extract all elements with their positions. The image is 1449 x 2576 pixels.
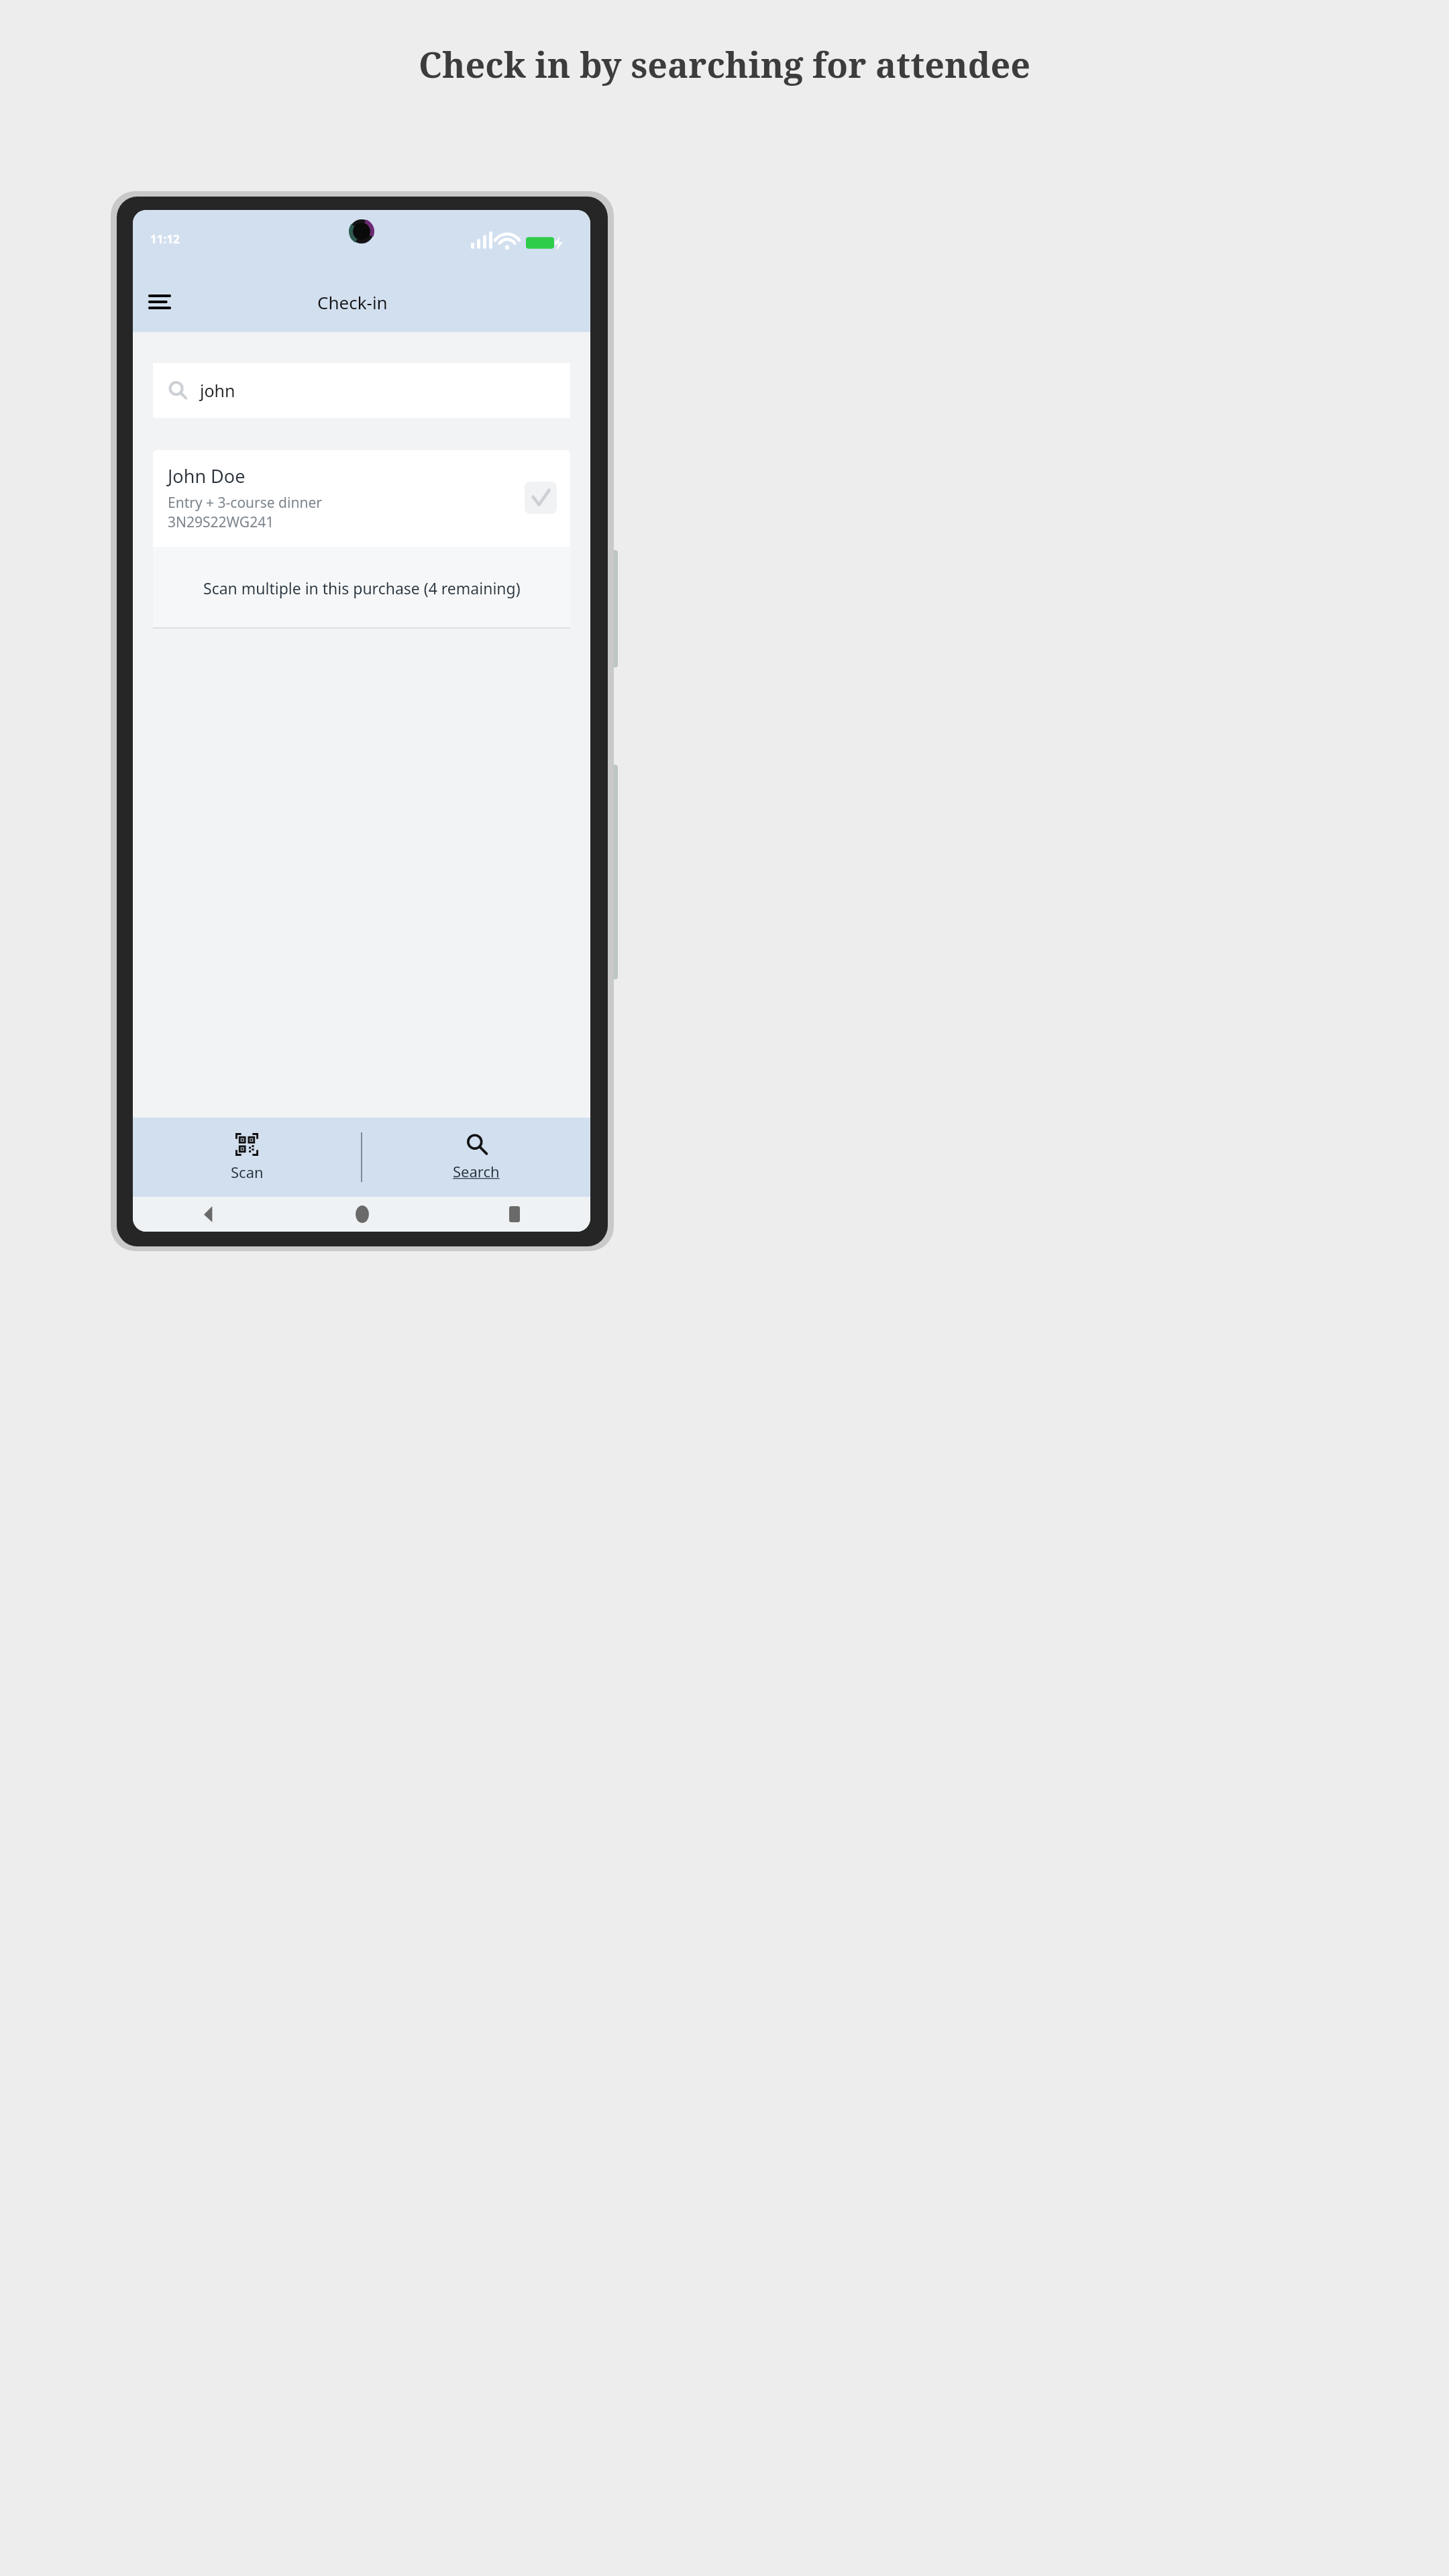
staticText: John Doe <box>168 464 246 488</box>
staticText: 3N29S22WG241 <box>168 513 274 532</box>
button[interactable]: Scan <box>133 1118 361 1197</box>
button[interactable]: Scan multiple in this purchase (4 remain… <box>153 547 570 629</box>
button[interactable]: Check in John Doe <box>525 482 557 514</box>
staticText: Entry + 3-course dinner <box>168 493 322 513</box>
button[interactable]: John Doe <box>153 450 570 547</box>
button[interactable]: Search <box>362 1118 590 1197</box>
staticText: Scan <box>231 1162 264 1182</box>
button[interactable]: Menu <box>141 283 178 321</box>
button[interactable]: Home <box>286 1197 438 1232</box>
button[interactable]: Recent apps <box>438 1197 590 1232</box>
staticText: Check in by searching for attendee <box>419 40 1030 88</box>
staticText: Check-in <box>317 290 388 314</box>
staticText: Scan multiple in this purchase (4 remain… <box>203 578 521 598</box>
staticText: john <box>200 379 235 402</box>
staticText: 11:12 <box>150 231 180 247</box>
staticText: Search <box>453 1161 500 1181</box>
button[interactable]: john <box>153 363 570 418</box>
button[interactable]: Back <box>133 1197 286 1232</box>
